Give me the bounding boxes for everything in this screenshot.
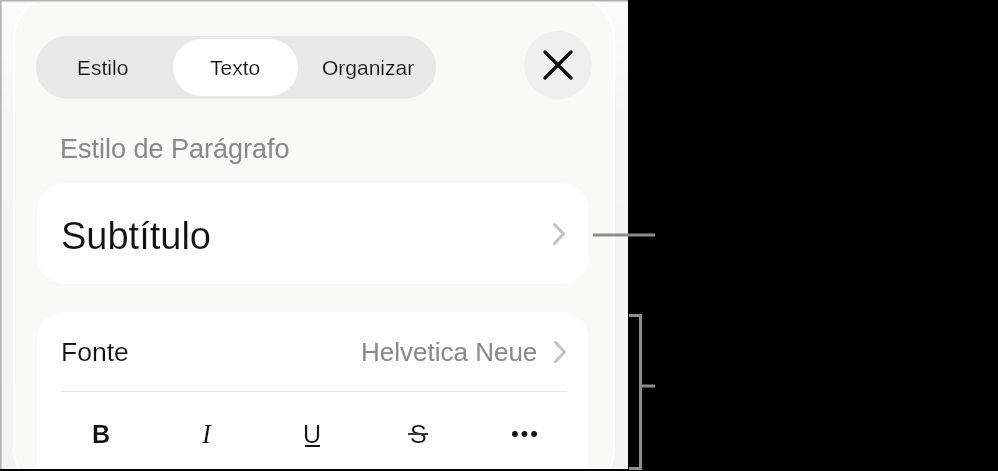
button[interactable]: Organizar [304,39,433,96]
staticText: U [303,420,322,448]
button[interactable]: Mais opções [471,392,577,471]
staticText: Texto [210,56,261,79]
staticText: Organizar [322,56,415,79]
staticText: Fonte [61,337,129,367]
button[interactable]: Texto [173,39,298,96]
staticText: Subtítulo [61,215,211,257]
staticText: S [410,420,427,448]
button[interactable]: B [49,392,154,471]
staticText: Helvetica Neue [361,337,538,366]
button[interactable]: Fonte [37,312,589,391]
button[interactable]: Fechar [524,31,592,99]
staticText: B [92,420,111,448]
button[interactable]: U [259,392,365,471]
button[interactable]: Estilo [39,39,167,96]
button[interactable]: Subtítulo [37,183,589,284]
staticText: Estilo [77,56,129,79]
button[interactable]: I [154,392,259,471]
staticText: Estilo de Parágrafo [60,134,290,164]
button[interactable]: S [365,392,471,471]
staticText: I [202,419,211,449]
